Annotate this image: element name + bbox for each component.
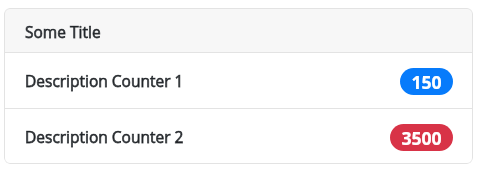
staticText: 150 bbox=[411, 70, 442, 94]
staticText: Description Counter 1 bbox=[25, 70, 184, 91]
staticText: Some Title bbox=[25, 21, 101, 42]
staticText: Description Counter 2 bbox=[25, 126, 184, 147]
staticText: Description Counter 2 bbox=[25, 126, 184, 147]
staticText: Description Counter 1 bbox=[25, 70, 184, 91]
button[interactable]: Description Counter 2 bbox=[4, 109, 473, 164]
button[interactable]: Description Counter 1 bbox=[4, 53, 473, 108]
staticText: 3500 bbox=[401, 126, 442, 150]
staticText: Some Title bbox=[25, 21, 101, 42]
